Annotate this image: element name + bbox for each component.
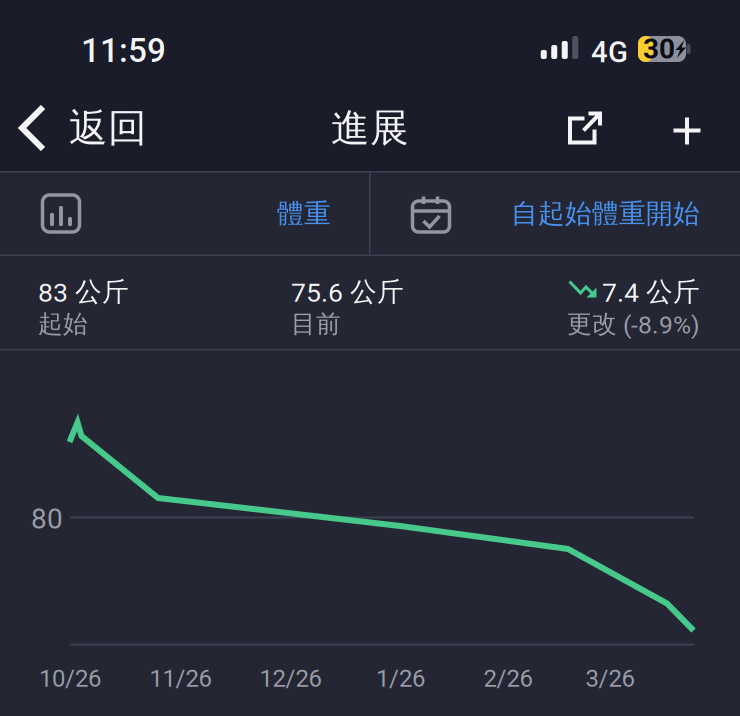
staticText: 2/26	[483, 664, 532, 693]
staticText: 目前	[291, 309, 341, 340]
staticText: 體重	[277, 197, 331, 230]
staticText: 12/26	[259, 664, 321, 693]
button[interactable]: Share	[550, 85, 620, 171]
button[interactable]: 返回	[0, 85, 169, 171]
staticText: 11:59	[81, 31, 166, 70]
staticText: 4G	[591, 35, 628, 69]
staticText: 83 公斤	[38, 275, 129, 309]
staticText: 更改 (-8.9%)	[567, 309, 700, 340]
staticText: 30	[643, 33, 675, 65]
staticText: 3/26	[585, 664, 634, 693]
staticText: 起始	[38, 309, 88, 340]
staticText: 返回	[69, 104, 147, 152]
staticText: 自起始體重開始	[511, 197, 700, 230]
staticText: 11/26	[149, 664, 211, 693]
staticText: 80	[31, 502, 63, 535]
staticText: 10/26	[39, 664, 101, 693]
button[interactable]: 體重	[0, 172, 370, 254]
button[interactable]: 自起始體重開始	[370, 172, 740, 254]
staticText: 7.4 公斤	[602, 275, 700, 309]
button[interactable]: Add	[652, 85, 722, 174]
staticText: 75.6 公斤	[291, 275, 404, 309]
staticText: 1/26	[376, 664, 425, 693]
staticText: 進展	[331, 104, 409, 152]
